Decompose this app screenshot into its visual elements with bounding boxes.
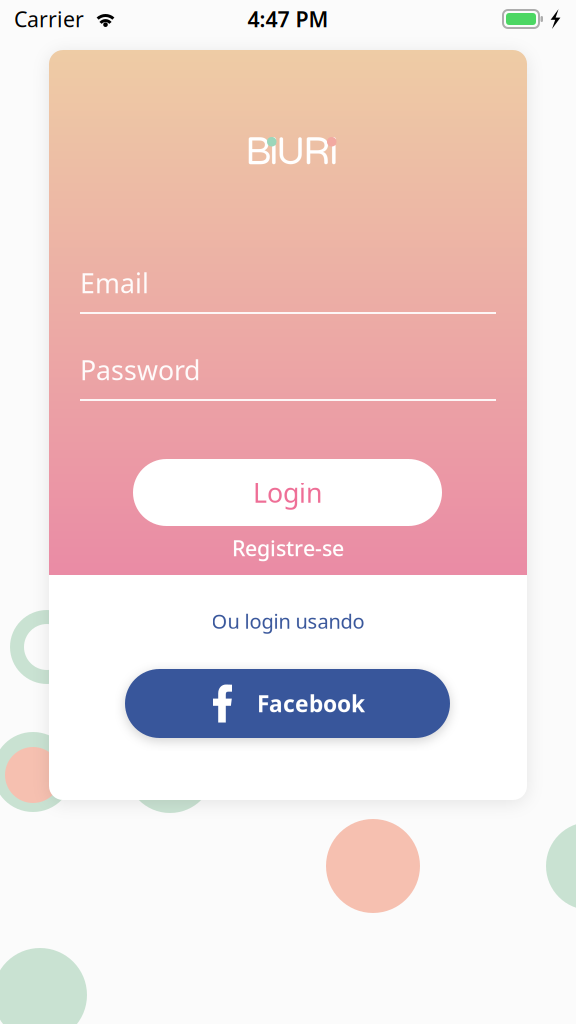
button[interactable]: Registre-se [208,533,368,563]
staticText: Login [253,475,322,510]
staticText: Email [80,265,149,301]
staticText: Carrier [14,5,84,33]
staticText: BiURi [245,129,339,175]
button[interactable]: Login [133,459,442,526]
staticText: Facebook [257,688,365,718]
staticText: 4:47 PM [247,5,328,33]
button[interactable]: Facebook [125,669,450,738]
staticText: Ou login usando [211,608,364,634]
staticText: Registre-se [232,534,344,562]
staticText: Password [80,352,200,388]
